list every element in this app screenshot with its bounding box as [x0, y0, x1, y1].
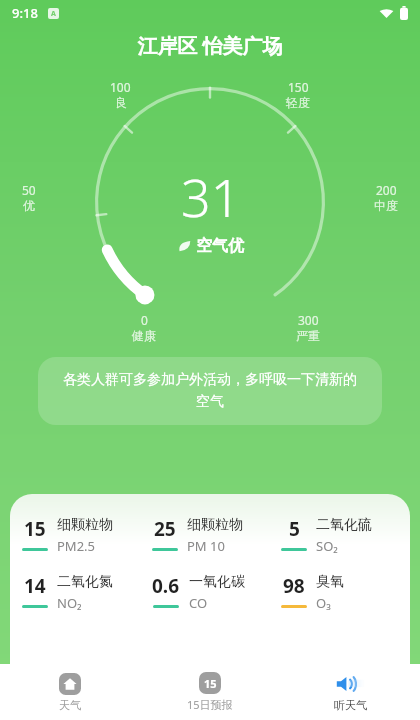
staticText: 14: [24, 573, 46, 599]
staticText: A: [51, 9, 56, 19]
staticText: 空气优: [196, 236, 244, 256]
button[interactable]: 25: [146, 516, 275, 555]
staticText: 15日预报: [187, 697, 233, 712]
staticText: PM 10: [187, 537, 225, 555]
staticText: 150: [288, 79, 309, 95]
staticText: 300: [298, 312, 319, 328]
staticText: 健康: [132, 328, 156, 343]
button[interactable]: 98: [275, 573, 404, 612]
staticText: 细颗粒物: [187, 516, 243, 534]
button[interactable]: 14: [16, 573, 146, 612]
staticText: 5: [289, 516, 300, 542]
staticText: 优: [23, 198, 35, 213]
staticText: 二氧化氮: [57, 573, 113, 591]
staticText: 一氧化碳: [189, 573, 245, 591]
staticText: 天气: [59, 698, 81, 712]
staticText: 江岸区 怡美广场: [0, 32, 420, 59]
staticText: 细颗粒物: [57, 516, 113, 534]
button[interactable]: 0.6: [146, 573, 275, 612]
staticText: 良: [115, 95, 127, 110]
staticText: 中度: [374, 198, 398, 213]
staticText: 15: [204, 676, 217, 691]
staticText: 0.6: [152, 573, 180, 599]
button[interactable]: 15日预报: [140, 664, 280, 720]
button[interactable]: 天气: [0, 664, 140, 720]
staticText: 严重: [296, 328, 320, 343]
staticText: 听天气: [334, 698, 367, 712]
button[interactable]: 15: [16, 516, 146, 555]
button[interactable]: 听天气: [280, 664, 420, 720]
staticText: CO: [189, 594, 208, 612]
staticText: 0: [141, 312, 148, 328]
staticText: 100: [110, 79, 131, 95]
staticText: SO₂: [316, 537, 338, 555]
staticText: 轻度: [286, 95, 310, 110]
staticText: 200: [376, 182, 397, 198]
staticText: 98: [283, 573, 305, 599]
button[interactable]: 各类人群可多参加户外活动，多呼吸一下清新的空气: [38, 357, 382, 425]
staticText: 31: [181, 161, 241, 232]
staticText: 臭氧: [316, 573, 344, 591]
staticText: 9:18: [12, 4, 38, 22]
staticText: O₃: [316, 594, 331, 612]
staticText: NO₂: [57, 594, 82, 612]
staticText: 二氧化硫: [316, 516, 372, 534]
button[interactable]: 5: [275, 516, 404, 555]
staticText: PM2.5: [57, 537, 96, 555]
staticText: 25: [154, 516, 176, 542]
staticText: 15: [24, 516, 46, 542]
staticText: 各类人群可多参加户外活动，多呼吸一下清新的空气: [60, 371, 360, 411]
staticText: 50: [22, 182, 36, 198]
